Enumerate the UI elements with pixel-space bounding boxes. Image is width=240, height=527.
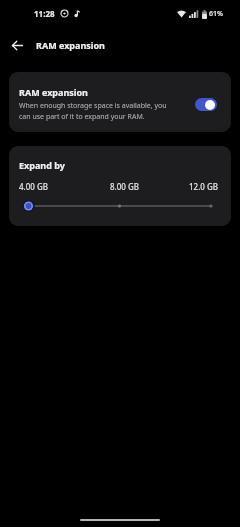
staticText: 12.0 GB xyxy=(189,181,219,192)
staticText: Expand by xyxy=(19,159,65,171)
button[interactable] xyxy=(7,35,28,56)
staticText: RAM expansion xyxy=(19,86,88,98)
button[interactable] xyxy=(195,98,217,111)
button[interactable]: RAM expansion xyxy=(9,72,231,132)
staticText: 4.00 GB xyxy=(19,181,49,192)
staticText: When enough storage space is available, … xyxy=(19,101,167,121)
staticText: 11:28 xyxy=(34,8,55,19)
staticText: RAM expansion xyxy=(36,39,105,51)
staticText: 8.00 GB xyxy=(110,181,140,192)
staticText: 61% xyxy=(209,9,223,19)
